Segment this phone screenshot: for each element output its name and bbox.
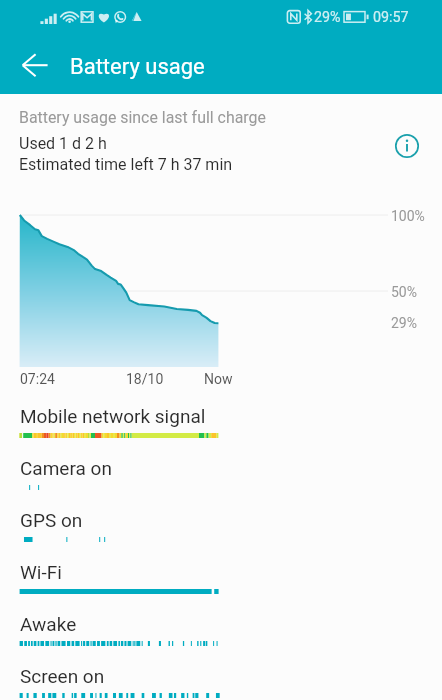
staticText: GPS on — [20, 509, 83, 531]
staticText: Screen on — [20, 665, 105, 687]
staticText: Battery usage since last full charge — [19, 108, 266, 127]
staticText: 100% — [391, 208, 425, 224]
staticText: 07:24 — [20, 371, 55, 387]
button[interactable]: GPS on — [0, 509, 442, 542]
button[interactable]: Wi-Fi — [0, 561, 442, 594]
staticText: Estimated time left 7 h 37 min — [19, 155, 233, 174]
staticText: Wi-Fi — [20, 561, 62, 583]
staticText: 29% — [391, 315, 417, 331]
button[interactable]: Awake — [0, 613, 442, 646]
button[interactable]: Mobile network signal — [0, 405, 442, 438]
staticText: 29% — [314, 9, 341, 26]
button[interactable]: Camera on — [0, 457, 442, 490]
staticText: Awake — [20, 613, 77, 635]
button[interactable]: Back — [13, 44, 57, 88]
staticText: Battery usage — [70, 54, 205, 80]
staticText: 50% — [391, 284, 417, 300]
staticText: 09:57 — [373, 9, 409, 26]
staticText: 18/10 — [126, 371, 164, 387]
button[interactable]: Screen on — [0, 665, 442, 698]
button[interactable]: Info — [391, 130, 423, 162]
staticText: Used 1 d 2 h — [19, 134, 107, 153]
staticText: Camera on — [20, 457, 112, 479]
staticText: Now — [204, 371, 233, 387]
staticText: Mobile network signal — [20, 405, 206, 427]
